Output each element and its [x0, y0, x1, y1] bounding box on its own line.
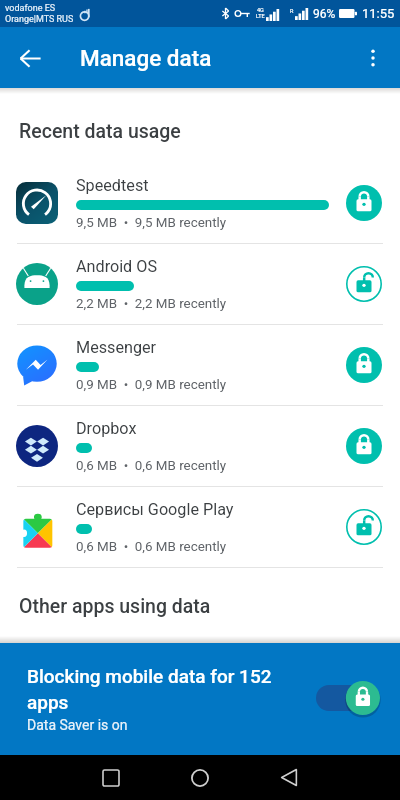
- button[interactable]: Restricted data: [340, 503, 388, 551]
- staticText: 96%: [313, 7, 336, 21]
- button[interactable]: Home: [176, 755, 224, 800]
- staticText: Messenger: [76, 338, 157, 357]
- button[interactable]: Recent apps: [87, 755, 135, 800]
- staticText: 0,9 MB • 0,9 MB recently: [76, 377, 227, 393]
- button[interactable]: Unrestricted data: [340, 422, 388, 470]
- staticText: Dropbox: [76, 419, 137, 438]
- staticText: 0,6 MB • 0,6 MB recently: [76, 458, 227, 474]
- staticText: Orange|MTS RUS: [5, 14, 74, 25]
- staticText: R: [290, 8, 294, 14]
- button[interactable]: Data Saver toggle: [316, 680, 380, 716]
- button[interactable]: Unrestricted data: [340, 179, 388, 227]
- staticText: Other apps using data: [19, 595, 211, 618]
- button[interactable]: Android OS: [0, 244, 400, 324]
- staticText: Blocking mobile data for 152 apps: [27, 665, 299, 713]
- staticText: Сервисы Google Play: [76, 500, 234, 519]
- button[interactable]: More options: [352, 37, 394, 79]
- button[interactable]: Restricted data: [340, 260, 388, 308]
- staticText: 2,2 MB • 2,2 MB recently: [76, 296, 227, 312]
- staticText: Speedtest: [76, 176, 149, 195]
- staticText: 4G: [257, 7, 264, 13]
- staticText: vodafone ES: [5, 3, 56, 14]
- staticText: LTE: [256, 13, 265, 19]
- staticText: 9,5 MB • 9,5 MB recently: [76, 215, 227, 231]
- button[interactable]: Сервисы Google Play: [0, 487, 400, 567]
- staticText: Data Saver is on: [27, 717, 128, 733]
- staticText: 0,6 MB • 0,6 MB recently: [76, 539, 227, 555]
- button[interactable]: Back: [265, 755, 313, 800]
- staticText: Android OS: [76, 257, 158, 276]
- button[interactable]: Messenger: [0, 325, 400, 405]
- button[interactable]: Dropbox: [0, 406, 400, 486]
- button[interactable]: Navigate up: [9, 37, 51, 79]
- button[interactable]: Speedtest: [0, 163, 400, 243]
- staticText: Manage data: [80, 45, 212, 71]
- button[interactable]: Blocking mobile data for 152 apps: [0, 643, 400, 755]
- button[interactable]: Unrestricted data: [340, 341, 388, 389]
- staticText: Recent data usage: [19, 120, 181, 143]
- staticText: 11:55: [362, 6, 395, 21]
